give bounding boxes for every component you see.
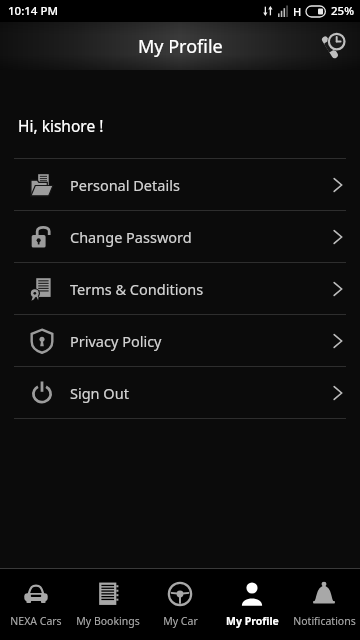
staticText: My Profile bbox=[226, 614, 279, 628]
button[interactable]: My Bookings bbox=[72, 569, 144, 640]
button[interactable]: My Car bbox=[144, 569, 216, 640]
button[interactable]: Change Password bbox=[0, 211, 360, 262]
staticText: My Profile bbox=[138, 34, 223, 59]
staticText: 25% bbox=[331, 3, 354, 19]
button[interactable]: NEXA Cars bbox=[0, 569, 72, 640]
button[interactable]: Personal Details bbox=[0, 159, 360, 210]
button[interactable]: Call history bbox=[310, 24, 354, 68]
staticText: My Bookings bbox=[76, 614, 140, 628]
staticText: Personal Details bbox=[70, 175, 332, 195]
staticText: Terms & Conditions bbox=[70, 279, 332, 299]
button[interactable]: Sign Out bbox=[0, 367, 360, 418]
staticText: Hi, kishore ! bbox=[18, 115, 104, 136]
staticText: Change Password bbox=[70, 227, 332, 247]
staticText: 10:14 PM bbox=[8, 3, 59, 19]
staticText: Sign Out bbox=[70, 383, 332, 403]
button[interactable]: Privacy Policy bbox=[0, 315, 360, 366]
button[interactable]: Terms & Conditions bbox=[0, 263, 360, 314]
staticText: NEXA Cars bbox=[10, 614, 62, 628]
staticText: H bbox=[293, 4, 302, 19]
staticText: Notifications bbox=[293, 614, 356, 628]
staticText: My Car bbox=[163, 614, 198, 628]
button[interactable]: My Profile bbox=[216, 569, 288, 640]
staticText: Privacy Policy bbox=[70, 331, 332, 351]
button[interactable]: Notifications bbox=[288, 569, 360, 640]
